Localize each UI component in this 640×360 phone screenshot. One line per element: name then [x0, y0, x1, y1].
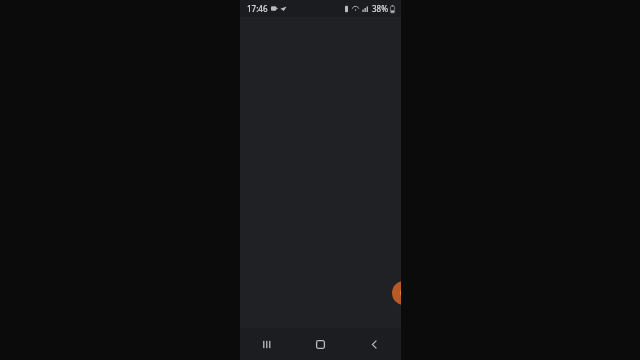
- button[interactable]: Action button: [392, 281, 401, 305]
- button[interactable]: Recents: [240, 328, 293, 360]
- staticText: 17:46: [247, 3, 268, 14]
- button[interactable]: Back: [347, 328, 401, 360]
- button[interactable]: Home: [293, 328, 347, 360]
- staticText: 38%: [372, 3, 388, 14]
